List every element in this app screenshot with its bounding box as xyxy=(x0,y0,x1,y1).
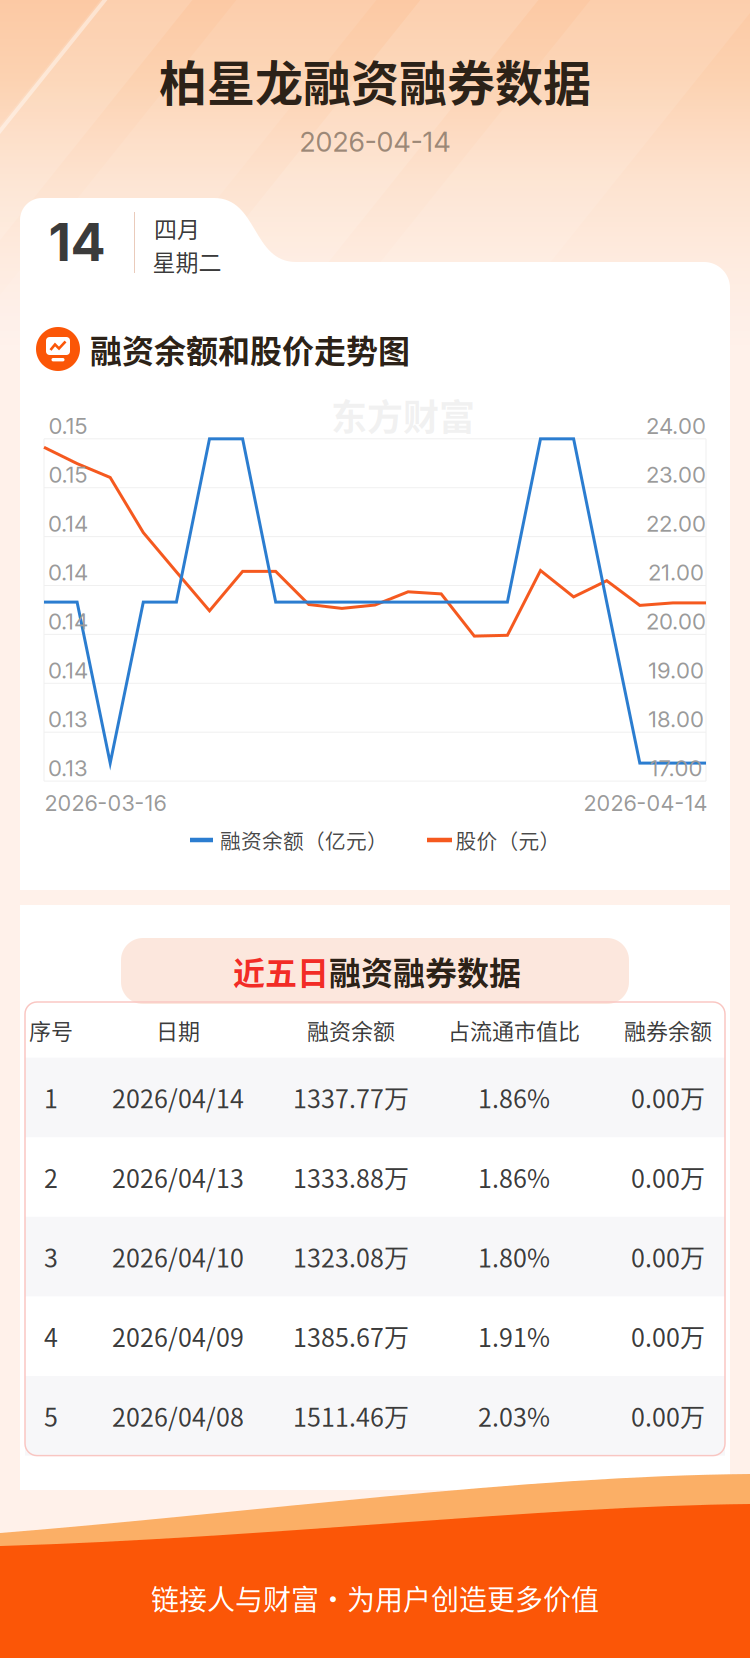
staticText: 22.00 xyxy=(646,510,706,537)
staticText: 5 xyxy=(44,1398,58,1434)
staticText: 序号 xyxy=(29,1014,73,1046)
staticText: 1385.67万 xyxy=(293,1318,409,1354)
staticText: 2026-04-14 xyxy=(299,126,450,158)
staticText: 0.00万 xyxy=(631,1238,705,1275)
staticText: 2.03% xyxy=(478,1398,550,1434)
staticText: 0.00万 xyxy=(631,1318,705,1354)
staticText: 24.00 xyxy=(646,412,706,439)
staticText: 3 xyxy=(44,1238,58,1275)
staticText: 0.15 xyxy=(48,461,87,488)
staticText: 融资余额 xyxy=(307,1014,395,1046)
staticText: 0.00万 xyxy=(631,1079,705,1115)
staticText: 1.91% xyxy=(478,1318,550,1354)
staticText: 18.00 xyxy=(648,706,704,733)
staticText: 17.00 xyxy=(649,755,702,782)
staticText: 融资余额和股价走势图 xyxy=(90,326,410,372)
staticText: 近五日 xyxy=(233,948,329,994)
staticText: 21.00 xyxy=(648,559,704,586)
staticText: 日期 xyxy=(156,1014,200,1046)
staticText: 0.13 xyxy=(48,755,88,782)
staticText: 0.14 xyxy=(48,510,88,537)
staticText: 2026/04/10 xyxy=(112,1238,244,1275)
staticText: 1.80% xyxy=(478,1238,550,1275)
staticText: 柏星龙融资融券数据 xyxy=(159,45,591,115)
staticText: 2026-04-14 xyxy=(583,790,707,816)
staticText: 链接人与财富·为用户创造更多价值 xyxy=(151,1578,599,1618)
staticText: 1.86% xyxy=(478,1159,550,1195)
staticText: 1511.46万 xyxy=(293,1398,409,1434)
staticText: 2026/04/14 xyxy=(112,1079,244,1115)
staticText: 0.14 xyxy=(48,608,88,635)
staticText: 0.14 xyxy=(48,657,88,684)
staticText: 1337.77万 xyxy=(293,1079,409,1115)
staticText: 23.00 xyxy=(646,461,706,488)
staticText: 2 xyxy=(44,1159,58,1195)
staticText: 1333.88万 xyxy=(293,1159,409,1195)
staticText: 2026-03-16 xyxy=(44,790,166,816)
staticText: 1 xyxy=(44,1079,58,1115)
staticText: 4 xyxy=(44,1318,58,1354)
staticText: 四月 xyxy=(154,211,200,245)
staticText: 2026/04/09 xyxy=(112,1318,244,1354)
staticText: 融券余额 xyxy=(624,1014,712,1046)
staticText: 0.14 xyxy=(48,559,88,586)
staticText: 1.86% xyxy=(478,1079,550,1115)
staticText: 融资余额（亿元） xyxy=(220,825,388,855)
staticText: 20.00 xyxy=(646,608,706,635)
staticText: 融资融券数据 xyxy=(329,948,521,994)
staticText: 股价（元） xyxy=(455,825,560,855)
staticText: 星期二 xyxy=(152,244,221,278)
staticText: 东方财富 xyxy=(331,389,475,441)
staticText: 占流通市值比 xyxy=(448,1014,580,1046)
staticText: 0.00万 xyxy=(631,1159,705,1195)
staticText: 14 xyxy=(48,210,105,273)
staticText: 2026/04/08 xyxy=(112,1398,244,1434)
staticText: 0.00万 xyxy=(631,1398,705,1434)
staticText: 2026/04/13 xyxy=(112,1159,244,1195)
staticText: 19.00 xyxy=(648,657,704,684)
staticText: 1323.08万 xyxy=(293,1238,409,1275)
staticText: 0.13 xyxy=(48,706,88,733)
staticText: 0.15 xyxy=(48,412,87,439)
